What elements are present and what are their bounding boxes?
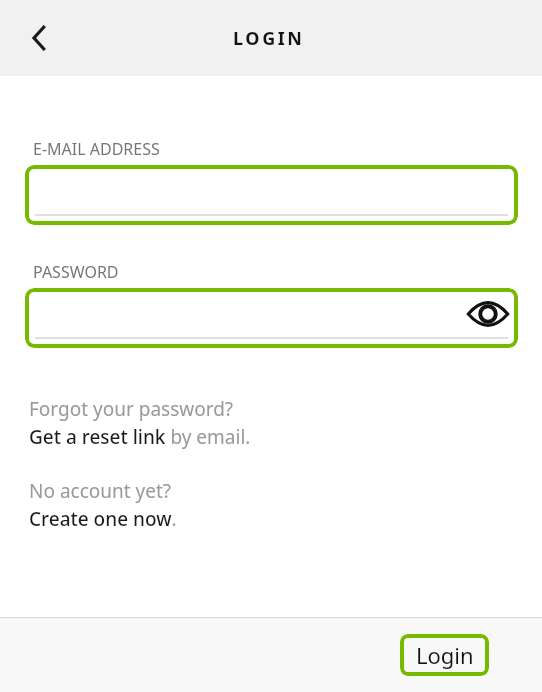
button[interactable]: Show password: [466, 292, 510, 336]
staticText: Login: [416, 640, 474, 670]
button[interactable]: Login: [400, 634, 489, 676]
button[interactable]: Show password: [25, 288, 518, 348]
button[interactable]: No account yet?: [29, 476, 185, 534]
staticText: E-MAIL ADDRESS: [33, 138, 160, 160]
staticText: Create one now.: [29, 506, 177, 532]
staticText: No account yet?: [29, 478, 172, 504]
button[interactable]: Forgot your password?: [29, 394, 259, 452]
button[interactable]: [25, 165, 518, 225]
staticText: Get a reset link by email.: [29, 424, 251, 450]
staticText: Forgot your password?: [29, 396, 234, 422]
staticText: PASSWORD: [33, 261, 119, 283]
staticText: LOGIN: [233, 26, 305, 51]
button[interactable]: Back: [14, 12, 66, 64]
